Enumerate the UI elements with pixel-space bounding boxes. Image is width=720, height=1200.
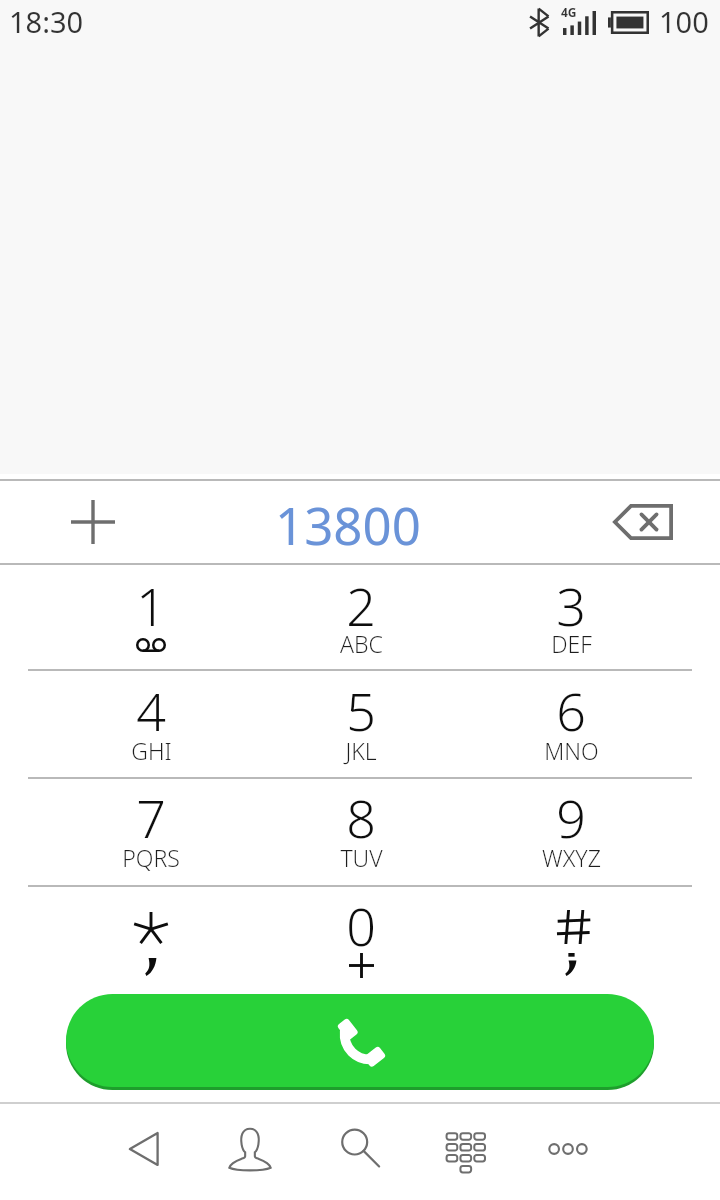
staticText: 9 bbox=[556, 782, 586, 853]
staticText: 1 bbox=[136, 570, 166, 641]
staticText: 7 bbox=[136, 782, 166, 853]
staticText: TUV bbox=[340, 842, 383, 873]
button[interactable]: Search bbox=[305, 1102, 407, 1200]
button[interactable]: 4 GHI bbox=[46, 670, 256, 777]
staticText: 2 bbox=[346, 570, 376, 641]
button[interactable]: star bbox=[46, 888, 256, 992]
button[interactable]: 1 voicemail bbox=[46, 565, 256, 669]
staticText: WXYZ bbox=[542, 842, 601, 873]
button[interactable]: More options bbox=[517, 1102, 619, 1200]
button[interactable]: 2 ABC bbox=[256, 565, 466, 669]
staticText: 5 bbox=[346, 675, 376, 746]
staticText: GHI bbox=[131, 735, 172, 766]
button[interactable]: pound bbox=[466, 888, 676, 992]
staticText: ABC bbox=[340, 628, 383, 659]
staticText: 4 bbox=[136, 675, 166, 746]
button[interactable]: 0 + bbox=[256, 888, 466, 992]
button[interactable]: Back bbox=[94, 1102, 196, 1200]
staticText: 0 bbox=[346, 890, 376, 961]
button[interactable]: Contacts bbox=[199, 1102, 301, 1200]
staticText: MNO bbox=[544, 735, 599, 766]
button[interactable]: Call bbox=[66, 994, 654, 1087]
staticText: DEF bbox=[551, 628, 592, 659]
button[interactable]: 3 DEF bbox=[466, 565, 676, 669]
button[interactable]: 9 WXYZ bbox=[466, 777, 676, 885]
button[interactable]: Backspace bbox=[566, 481, 720, 563]
staticText: 8 bbox=[346, 782, 376, 853]
staticText: JKL bbox=[345, 735, 377, 766]
staticText: 18:30 bbox=[9, 2, 84, 41]
button[interactable]: 6 MNO bbox=[466, 670, 676, 777]
staticText: 13800 bbox=[275, 490, 421, 559]
staticText: 3 bbox=[556, 570, 586, 641]
button[interactable]: 8 TUV bbox=[256, 777, 466, 885]
button[interactable]: 5 JKL bbox=[256, 670, 466, 777]
button[interactable]: Dialpad bbox=[413, 1102, 515, 1200]
button[interactable]: Add pause bbox=[0, 481, 186, 563]
staticText: 6 bbox=[556, 675, 586, 746]
button[interactable]: 7 PQRS bbox=[46, 777, 256, 885]
staticText: 4G bbox=[561, 4, 577, 20]
staticText: PQRS bbox=[122, 842, 180, 873]
staticText: 100 bbox=[659, 2, 709, 41]
